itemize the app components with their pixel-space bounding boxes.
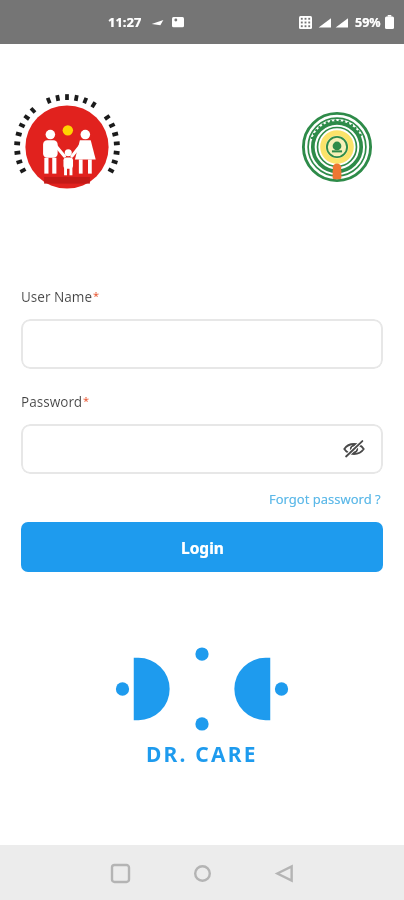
button[interactable]: Back xyxy=(261,850,307,896)
staticText: 11:27 xyxy=(108,13,142,31)
staticText: * xyxy=(93,288,100,303)
button[interactable]: Show password xyxy=(21,424,383,474)
button[interactable]: Forgot password ? xyxy=(267,487,383,511)
button[interactable]: Show password xyxy=(339,434,369,464)
button[interactable]: Recent apps xyxy=(97,850,143,896)
staticText: Login xyxy=(181,537,224,558)
button[interactable]: Login xyxy=(21,522,383,572)
button[interactable]: Home xyxy=(179,850,225,896)
button[interactable] xyxy=(21,319,383,369)
staticText: Password xyxy=(21,393,83,411)
staticText: DR. CARE xyxy=(146,740,258,769)
staticText: Forgot password ? xyxy=(269,490,381,508)
staticText: 59% xyxy=(355,14,381,31)
staticText: User Name xyxy=(21,288,93,306)
staticText: * xyxy=(83,393,90,408)
